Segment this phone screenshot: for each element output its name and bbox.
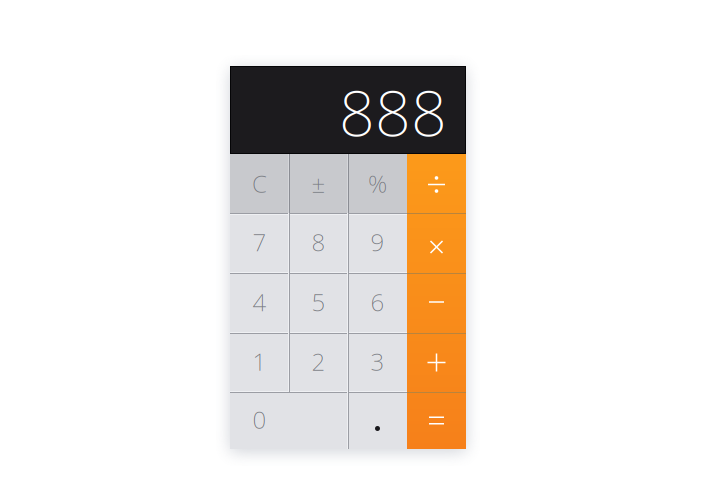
staticText: 8: [311, 226, 325, 258]
staticText: 1: [252, 346, 266, 377]
button[interactable]: Equals: [407, 392, 466, 449]
staticText: 3: [370, 346, 384, 377]
staticText: 6: [370, 286, 384, 318]
button[interactable]: 3: [348, 333, 407, 392]
staticText: %: [368, 168, 387, 199]
staticText: 888: [339, 70, 447, 154]
button[interactable]: %: [348, 154, 407, 213]
button[interactable]: Subtract: [407, 273, 466, 333]
staticText: C: [252, 168, 267, 199]
button[interactable]: 0: [230, 392, 348, 449]
staticText: ±: [311, 168, 325, 199]
staticText: 0: [252, 404, 266, 435]
staticText: 2: [311, 346, 325, 377]
button[interactable]: 8: [289, 213, 348, 273]
button[interactable]: C: [230, 154, 289, 213]
staticText: 9: [370, 226, 384, 258]
button[interactable]: Divide: [407, 154, 466, 213]
button[interactable]: Multiply: [407, 213, 466, 273]
button[interactable]: 2: [289, 333, 348, 392]
button[interactable]: ±: [289, 154, 348, 213]
button[interactable]: 6: [348, 273, 407, 333]
staticText: 7: [252, 226, 266, 258]
button[interactable]: 7: [230, 213, 289, 273]
button[interactable]: 5: [289, 273, 348, 333]
staticText: 5: [311, 286, 325, 318]
button[interactable]: Decimal point: [348, 392, 407, 449]
button[interactable]: 1: [230, 333, 289, 392]
button[interactable]: 4: [230, 273, 289, 333]
staticText: 4: [252, 286, 266, 318]
button[interactable]: Add: [407, 333, 466, 392]
button[interactable]: 9: [348, 213, 407, 273]
